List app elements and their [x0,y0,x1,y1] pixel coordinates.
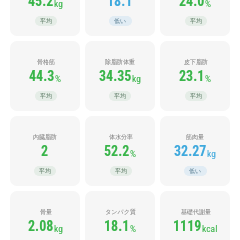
staticText: 骨格筋 [37,58,55,66]
button[interactable]: 体脂肪率 [160,0,230,36]
button[interactable]: 除脂肪体重 [85,41,155,111]
staticText: 平均 [115,167,127,175]
staticText: % [205,73,212,84]
staticText: 52.2 [104,143,130,159]
staticText: 18.1 [107,0,133,9]
staticText: kcal [202,223,218,234]
staticText: 体水分率 [109,133,133,141]
staticText: % [130,223,137,234]
staticText: 24.0 [179,0,205,9]
staticText: 平均 [190,17,202,25]
staticText: 平均 [40,92,52,100]
button[interactable]: 筋肉量 [160,116,230,186]
staticText: kg [132,73,141,84]
staticText: 骨量 [40,208,52,216]
button[interactable]: タンパク質 [85,191,155,240]
staticText: 2.08 [28,218,54,234]
staticText: 基礎代謝量 [181,208,211,216]
button[interactable]: 基礎代謝量 [160,191,230,240]
staticText: タンパク質 [105,208,136,216]
staticText: 平均 [40,17,52,25]
button[interactable]: 皮下脂肪 [160,41,230,111]
staticText: 1119 [173,218,202,234]
staticText: 平均 [114,92,126,100]
staticText: 18.1 [104,218,130,234]
staticText: kg [54,223,63,234]
button[interactable]: 内臓脂肪 [10,116,80,186]
staticText: 44.3 [29,68,55,84]
staticText: 低い [114,17,127,25]
staticText: 2 [41,143,49,159]
staticText: 32.27 [174,143,207,159]
staticText: 皮下脂肪 [184,58,208,66]
button[interactable]: 体重 [10,0,80,36]
staticText: 除脂肪体重 [105,58,135,66]
button[interactable]: 体水分率 [85,116,155,186]
button[interactable]: BMI [85,0,155,36]
staticText: % [130,148,137,159]
staticText: % [205,0,212,9]
staticText: 45.2 [28,0,54,9]
staticText: 低い [189,167,202,175]
staticText: kg [54,0,63,9]
staticText: 筋肉量 [186,133,204,141]
button[interactable]: 骨量 [10,191,80,240]
button[interactable]: 骨格筋 [10,41,80,111]
staticText: 平均 [39,167,51,175]
staticText: 平均 [190,92,202,100]
staticText: 23.1 [179,68,205,84]
staticText: kg [207,148,216,159]
staticText: 34.35 [99,68,132,84]
staticText: 内臓脂肪 [33,133,57,141]
staticText: % [55,73,62,84]
